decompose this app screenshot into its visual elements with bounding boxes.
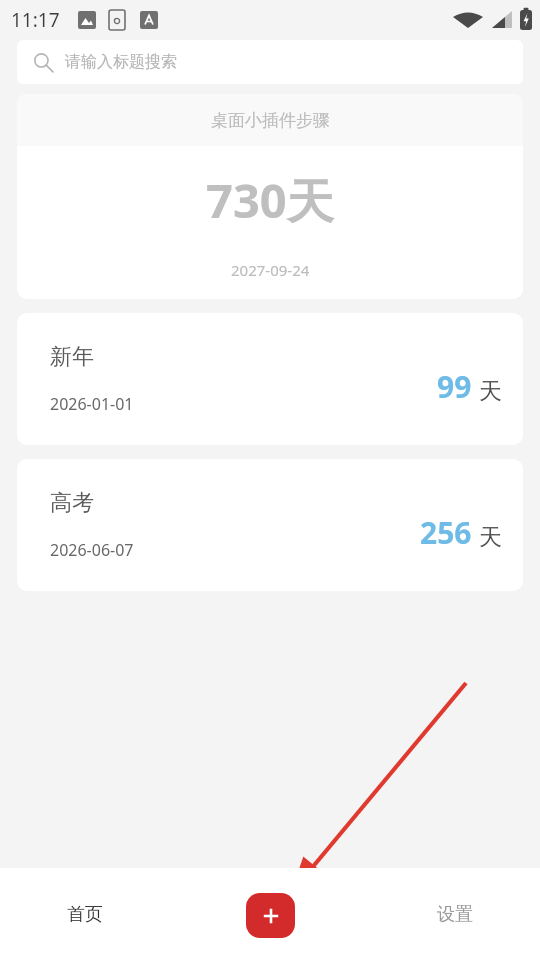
button[interactable]: 桌面小插件步骤 xyxy=(17,94,523,299)
staticText: 天 xyxy=(479,377,502,406)
staticText: 新年 xyxy=(50,343,94,371)
button[interactable]: 首页 xyxy=(22,883,148,945)
staticText: 2027-09-24 xyxy=(231,260,310,280)
button[interactable]: 新年 xyxy=(17,313,523,445)
button[interactable]: 设置 xyxy=(392,883,518,945)
staticText: 99 xyxy=(437,366,472,407)
staticText: 首页 xyxy=(67,903,103,926)
staticText: 2026-06-07 xyxy=(50,539,134,561)
staticText: 2026-01-01 xyxy=(50,393,134,415)
staticText: 11:17 xyxy=(11,7,60,33)
staticText: 桌面小插件步骤 xyxy=(211,110,330,131)
staticText: 天 xyxy=(479,523,502,552)
button[interactable]: Add countdown xyxy=(246,893,295,938)
staticText: 256 xyxy=(420,512,472,553)
staticText: 请输入标题搜索 xyxy=(65,52,177,72)
staticText: 设置 xyxy=(437,903,473,926)
button[interactable]: 高考 xyxy=(17,459,523,591)
staticText: 高考 xyxy=(50,489,94,517)
button[interactable]: 请输入标题搜索 xyxy=(17,40,523,84)
staticText: 730天 xyxy=(206,168,334,232)
